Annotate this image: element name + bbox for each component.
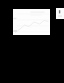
button[interactable] — [13, 9, 50, 35]
button[interactable]: More options — [56, 8, 64, 19]
